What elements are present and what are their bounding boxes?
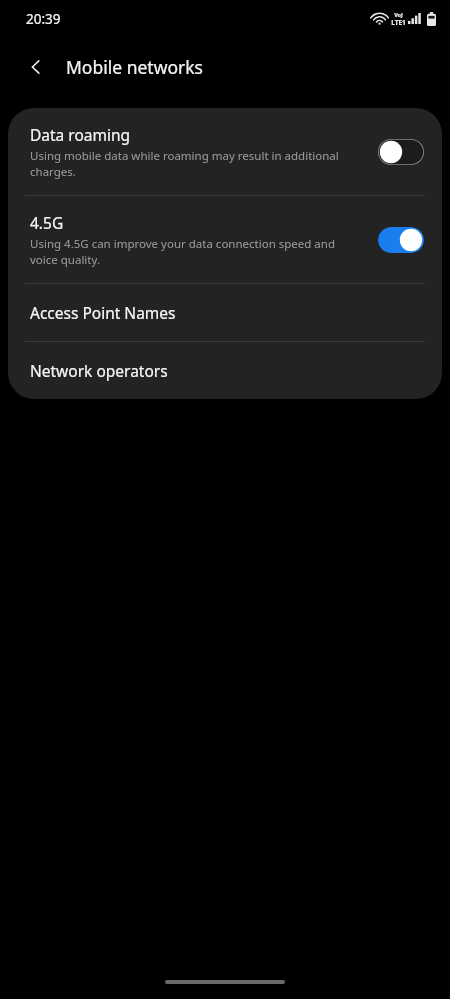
staticText: LTE1 — [391, 18, 406, 27]
staticText: Using 4.5G can improve your data connect… — [30, 236, 364, 267]
staticText: Mobile networks — [66, 55, 203, 79]
staticText: Data roaming — [30, 124, 131, 145]
button[interactable]: Off — [378, 139, 424, 165]
button[interactable]: On — [378, 227, 424, 253]
staticText: Using mobile data while roaming may resu… — [30, 148, 364, 179]
staticText: Network operators — [30, 360, 168, 381]
staticText: 4.5G — [30, 212, 64, 233]
staticText: Access Point Names — [30, 302, 176, 323]
staticText: VoJ — [394, 11, 403, 18]
button[interactable]: 4.5G — [8, 196, 442, 283]
button[interactable]: Back — [14, 45, 58, 89]
button[interactable]: Data roaming — [8, 108, 442, 195]
button[interactable]: Network operators — [8, 342, 442, 399]
staticText: 20:39 — [26, 10, 61, 28]
button[interactable]: Access Point Names — [8, 284, 442, 341]
